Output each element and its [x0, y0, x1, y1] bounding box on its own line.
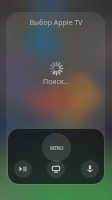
button[interactable] [8, 129, 104, 184]
button[interactable]: TV screen [47, 160, 65, 178]
button[interactable]: MENU [42, 133, 71, 162]
staticText: Поиск... [43, 77, 70, 87]
button[interactable]: Play or pause [14, 160, 32, 178]
staticText: MENU [50, 145, 64, 151]
staticText: Выбор Apple TV [29, 18, 83, 28]
button[interactable]: Voice search [81, 160, 99, 178]
